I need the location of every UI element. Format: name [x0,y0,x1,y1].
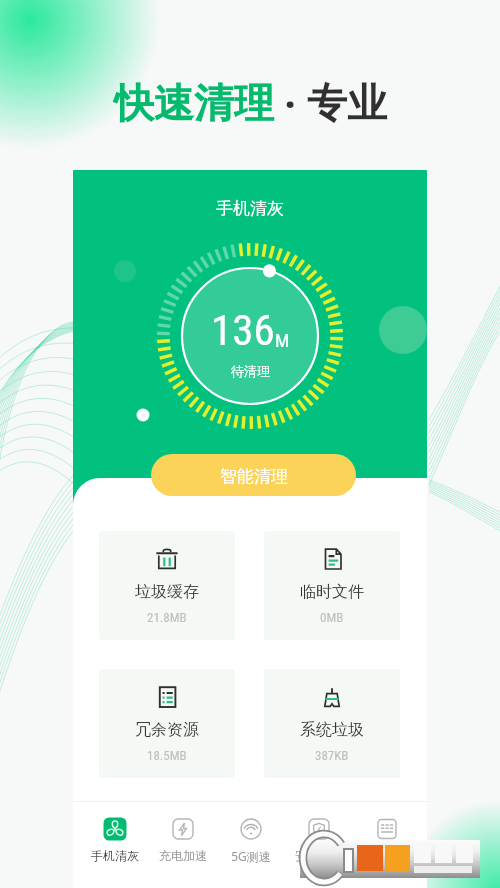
staticText: 待清理 [231,363,270,379]
staticText: 临时文件 [300,582,364,602]
staticText: 智能清理 [220,466,288,487]
staticText: · [274,76,307,130]
staticText: 136 [211,305,275,355]
staticText: 5G测速 [231,848,271,864]
button[interactable]: 垃圾缓存 [99,531,235,640]
button[interactable]: 充电加速 [149,812,217,863]
staticText: 18.5MB [147,748,187,763]
button[interactable]: 安全防护 [285,812,353,863]
staticText: M [275,329,290,351]
staticText: 快速清理 [114,78,274,128]
staticText: 专业 [307,78,387,128]
button[interactable]: 5G测速 [217,812,285,864]
staticText: 21.8MB [147,610,187,625]
staticText: 冗余资源 [135,720,199,740]
staticText: 387KB [315,748,349,763]
staticText: 手机清灰 [216,198,284,219]
button[interactable]: 临时文件 [264,531,400,640]
staticText: 系统垃圾 [300,720,364,740]
staticText: 充电加速 [159,848,207,863]
staticText: 手机清灰 [91,848,139,863]
button[interactable]: 智能清理 [151,454,356,496]
button[interactable]: 工具箱 [353,812,421,863]
staticText: 工具箱 [369,848,405,863]
staticText: 垃圾缓存 [135,582,199,602]
button[interactable]: 冗余资源 [99,669,235,778]
button[interactable]: 系统垃圾 [264,669,400,778]
staticText: 安全防护 [295,848,343,863]
staticText: 0MB [320,610,344,625]
button[interactable]: 手机清灰 [81,812,149,863]
